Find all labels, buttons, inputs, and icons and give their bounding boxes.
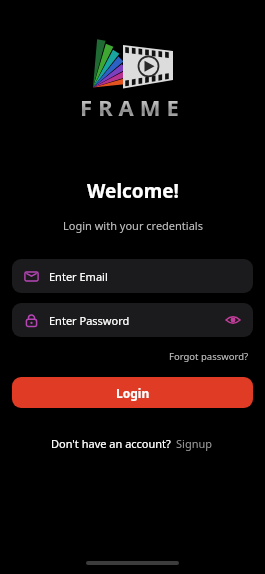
- staticText: Login with your credentials: [63, 218, 203, 233]
- staticText: Enter Password: [49, 313, 130, 328]
- button[interactable]: Enter Password: [12, 303, 253, 337]
- staticText: Don't have an account?: [51, 436, 171, 451]
- staticText: Welcome!: [87, 178, 179, 204]
- button[interactable]: Forgot password?: [167, 348, 251, 365]
- button[interactable]: Signup: [175, 434, 214, 453]
- staticText: Login: [116, 385, 150, 401]
- staticText: Forgot password?: [169, 350, 249, 363]
- staticText: Signup: [176, 436, 213, 451]
- staticText: FRAME: [80, 92, 185, 122]
- button[interactable]: Show password: [223, 310, 243, 330]
- button[interactable]: Login: [12, 377, 253, 408]
- button[interactable]: Enter Email: [12, 259, 253, 293]
- staticText: Enter Email: [49, 269, 108, 284]
